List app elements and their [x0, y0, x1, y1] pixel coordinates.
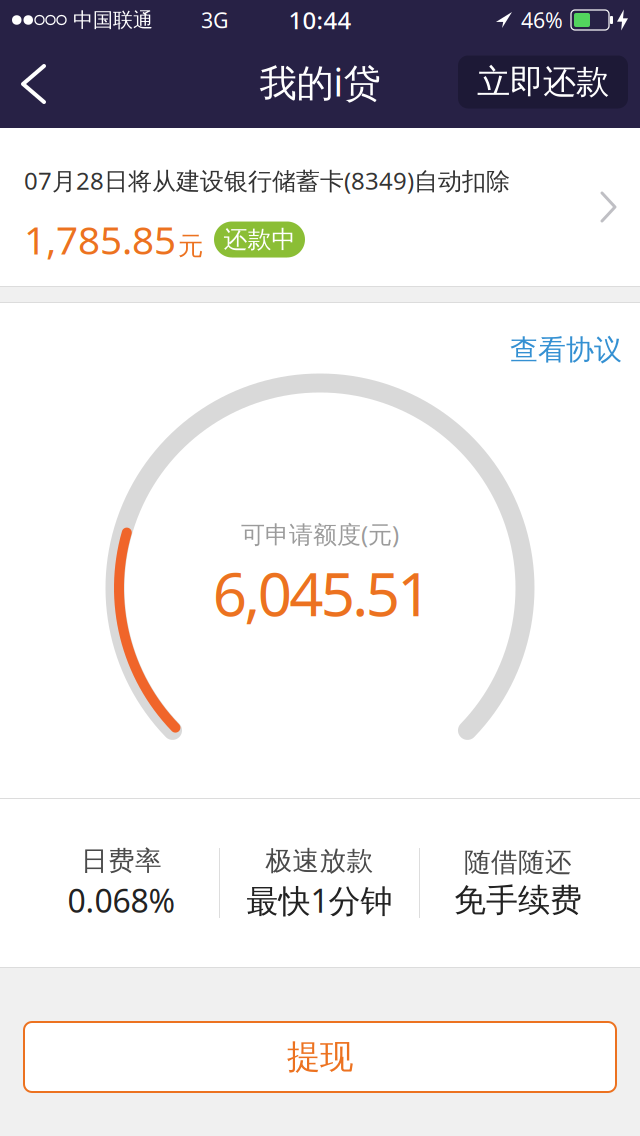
button[interactable]: 07月28日将从建设银行储蓄卡(8349)自动扣除: [0, 128, 640, 286]
staticText: 立即还款: [477, 61, 609, 102]
staticText: 07月28日将从建设银行储蓄卡(8349)自动扣除: [24, 165, 510, 196]
button[interactable]: 提现: [24, 1022, 616, 1092]
staticText: 日费率: [81, 844, 162, 877]
button[interactable]: 立即还款: [458, 57, 628, 110]
staticText: 查看协议: [510, 333, 622, 367]
staticText: 提现: [287, 1036, 353, 1077]
staticText: 最快1分钟: [246, 879, 392, 922]
staticText: 中国联通: [73, 8, 153, 32]
staticText: 10:44: [288, 4, 351, 36]
staticText: 6,045.51: [213, 553, 431, 633]
staticText: 免手续费: [454, 881, 582, 920]
staticText: 1,785.85: [24, 214, 176, 265]
button[interactable]: 查看协议: [510, 333, 622, 367]
staticText: 我的i贷: [259, 57, 380, 107]
staticText: 元: [178, 230, 203, 262]
staticText: 可申请额度(元): [241, 518, 399, 550]
staticText: 极速放款: [265, 844, 373, 877]
staticText: 3G: [201, 6, 229, 34]
staticText: 随借随还: [464, 846, 572, 879]
staticText: 46%: [521, 6, 563, 34]
staticText: 还款中: [223, 225, 295, 254]
staticText: 0.068%: [67, 879, 175, 922]
button[interactable]: [0, 42, 64, 126]
